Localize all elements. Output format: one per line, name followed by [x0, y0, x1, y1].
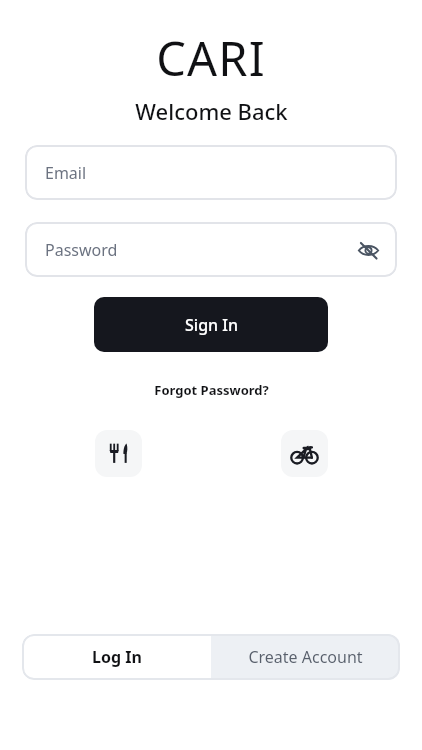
staticText: Email	[45, 162, 87, 184]
button[interactable]: Food	[95, 430, 142, 477]
button[interactable]: Bike	[281, 430, 328, 477]
staticText: Sign In	[185, 314, 238, 336]
staticText: Welcome Back	[135, 96, 288, 126]
button[interactable]: Create Account	[211, 634, 400, 680]
staticText: Forgot Password?	[154, 381, 269, 399]
staticText: Password	[45, 239, 118, 261]
button[interactable]: Forgot Password?	[146, 378, 277, 402]
button[interactable]: Sign In	[94, 297, 328, 352]
button[interactable]: Email	[25, 145, 397, 200]
staticText: Create Account	[248, 646, 363, 668]
staticText: CARI	[156, 26, 266, 90]
button[interactable]: Log In	[22, 634, 211, 680]
staticText: Log In	[92, 646, 142, 668]
button[interactable]: Show password	[351, 233, 385, 267]
button[interactable]: Password	[25, 222, 397, 277]
